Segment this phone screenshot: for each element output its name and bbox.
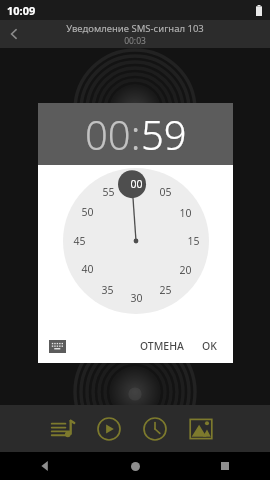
staticText: 20 — [179, 263, 192, 277]
button[interactable]: 05 — [153, 184, 177, 200]
button[interactable]: OK — [197, 334, 222, 358]
button[interactable]: Timer — [140, 414, 170, 444]
button[interactable]: 15 — [181, 233, 205, 249]
staticText: 25 — [159, 283, 172, 297]
staticText: 00 — [130, 177, 143, 191]
staticText: 05 — [159, 185, 172, 199]
button[interactable]: 10 — [173, 205, 197, 221]
staticText: 50 — [81, 205, 94, 219]
button[interactable]: Back — [0, 20, 28, 48]
button[interactable]: 50 — [75, 204, 99, 220]
button[interactable]: 45 — [67, 233, 91, 249]
staticText: 45 — [73, 234, 86, 248]
staticText: 10 — [179, 206, 192, 220]
staticText: 59 — [141, 107, 187, 161]
button[interactable]: Home — [90, 452, 180, 480]
button[interactable]: Recents — [180, 452, 270, 480]
staticText: 40 — [81, 262, 94, 276]
staticText: Уведомление SMS-сигнал 103 — [66, 22, 204, 35]
button[interactable]: Back — [0, 452, 90, 480]
staticText: 30 — [130, 291, 143, 305]
staticText: 35 — [101, 283, 114, 297]
staticText: 10:09 — [7, 3, 36, 18]
staticText: 15 — [187, 234, 200, 248]
button[interactable]: 35 — [95, 282, 119, 298]
button[interactable]: ОТМЕНА — [135, 334, 189, 358]
button[interactable]: 55 — [96, 184, 120, 200]
button[interactable]: Keyboard input — [49, 340, 66, 353]
button[interactable]: 30 — [124, 290, 148, 306]
staticText: 55 — [102, 185, 115, 199]
staticText: OK — [202, 339, 217, 353]
button[interactable]: 20 — [173, 262, 197, 278]
staticText: ОТМЕНА — [140, 339, 184, 353]
button[interactable]: Playlist — [48, 414, 78, 444]
button[interactable]: Play — [94, 414, 124, 444]
staticText: 00:03 — [124, 35, 146, 47]
staticText: 00: — [85, 107, 141, 161]
button[interactable]: Gallery — [186, 414, 216, 444]
button[interactable]: 25 — [153, 282, 177, 298]
button[interactable]: 00 — [124, 176, 148, 192]
button[interactable]: 40 — [75, 261, 99, 277]
